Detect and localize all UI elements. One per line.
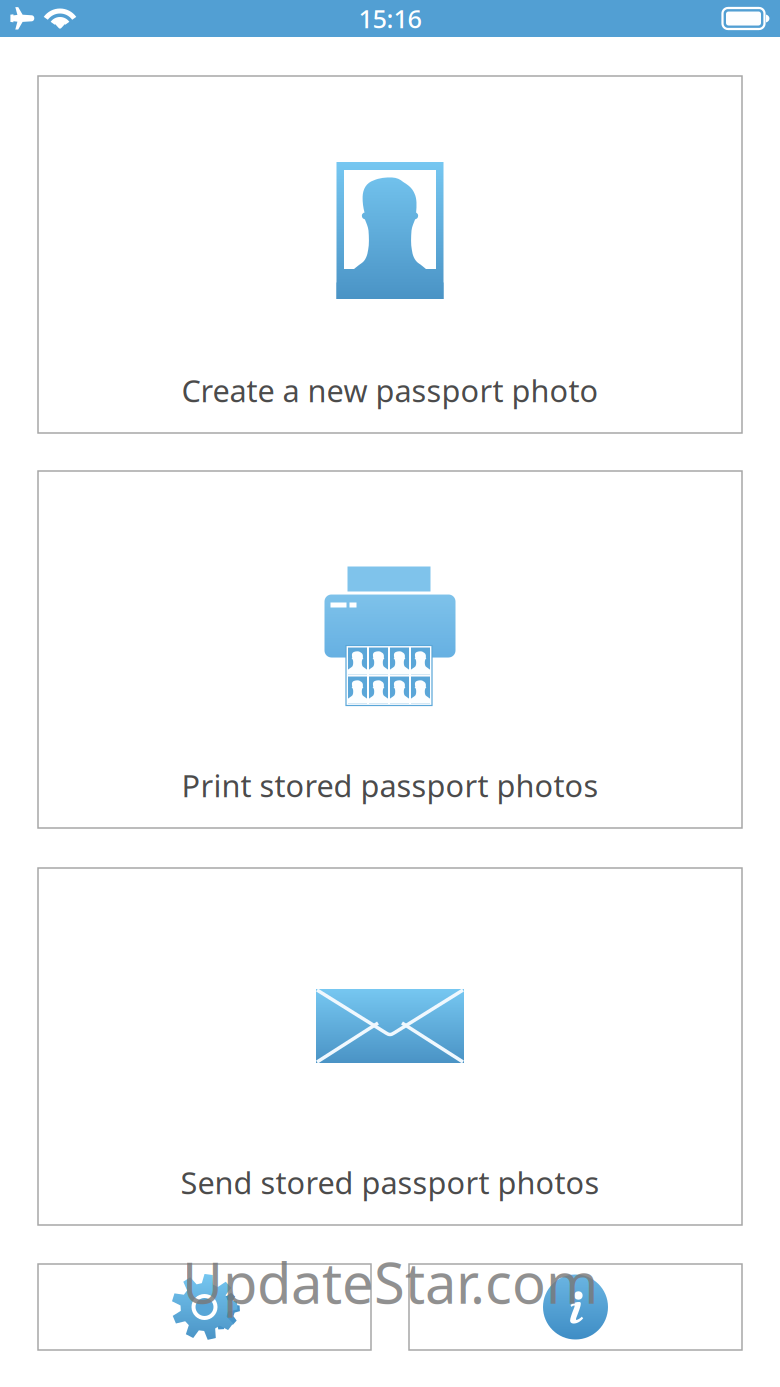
staticText: Create a new passport photo — [181, 370, 598, 411]
staticText: 15:16 — [358, 2, 421, 35]
button[interactable]: Information — [409, 1264, 742, 1350]
staticText: Print stored passport photos — [181, 765, 598, 806]
button[interactable]: Create a new passport photo — [38, 76, 742, 433]
button[interactable]: Print stored passport photos — [38, 471, 742, 828]
button[interactable]: Settings — [38, 1264, 371, 1350]
button[interactable]: Send stored passport photos — [38, 868, 742, 1225]
staticText: Send stored passport photos — [180, 1162, 599, 1203]
staticText: UpdateStar.com — [182, 1245, 598, 1319]
